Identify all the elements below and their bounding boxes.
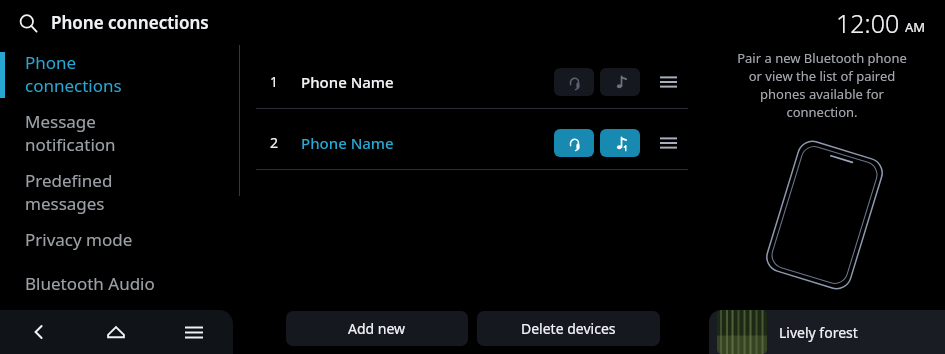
button[interactable]: Predefined (0, 166, 233, 225)
button[interactable]: Search Phone connections (16, 9, 211, 36)
button[interactable]: 2 (256, 116, 688, 169)
staticText: connections (25, 74, 122, 97)
button[interactable]: Phone audio (554, 68, 594, 96)
staticText: Pair a new Bluetooth phone or view the l… (707, 49, 937, 121)
staticText: Phone Name (301, 72, 394, 92)
staticText: Message (25, 110, 96, 133)
staticText: notification (25, 133, 116, 156)
staticText: 1 (270, 72, 279, 91)
button[interactable]: Add new (286, 311, 468, 346)
staticText: messages (25, 192, 105, 215)
button[interactable]: Privacy mode (0, 225, 233, 269)
staticText: Lively forest (779, 323, 858, 342)
staticText: Phone connections (51, 11, 209, 34)
button[interactable]: Media audio (600, 129, 640, 157)
button[interactable]: Home (77, 310, 155, 354)
staticText: Predefined (25, 169, 113, 192)
staticText: Phone (25, 51, 77, 74)
button[interactable]: Reorder device (654, 68, 682, 96)
button[interactable]: Reorder device (654, 129, 682, 157)
button[interactable]: Phone (0, 48, 233, 107)
button[interactable]: 1 (256, 55, 688, 108)
staticText: Bluetooth Audio (25, 272, 155, 295)
button[interactable]: Lively forest (709, 310, 945, 354)
staticText: Add new (348, 319, 406, 338)
button[interactable]: Delete devices (477, 311, 660, 346)
button[interactable]: Message (0, 107, 233, 166)
staticText: Phone Name (301, 133, 394, 153)
button[interactable]: Phone audio (554, 129, 594, 157)
staticText: 2 (270, 133, 279, 152)
button[interactable]: Back (0, 310, 77, 354)
button[interactable]: Media audio (600, 68, 640, 96)
button[interactable]: Bluetooth Audio (0, 269, 233, 313)
staticText: 12:00 (836, 6, 900, 40)
staticText: Delete devices (521, 319, 616, 338)
staticText: AM (905, 18, 926, 36)
staticText: Privacy mode (25, 228, 133, 251)
button[interactable]: Menu (155, 310, 233, 354)
